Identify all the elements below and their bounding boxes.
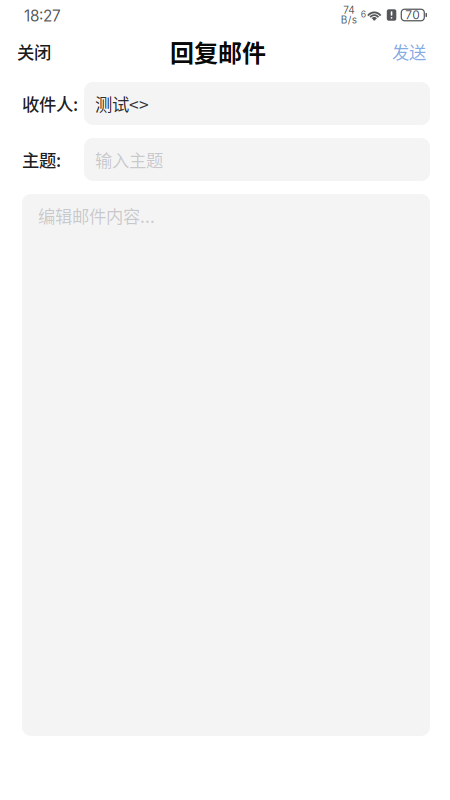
staticText: 测试<> bbox=[95, 91, 149, 116]
staticText: 70 bbox=[405, 8, 420, 22]
staticText: 输入主题 bbox=[95, 147, 163, 172]
staticText: 6 bbox=[361, 9, 366, 19]
staticText: 关闭 bbox=[17, 39, 51, 64]
staticText: 收件人: bbox=[22, 91, 78, 116]
staticText: 发送 bbox=[392, 39, 426, 64]
staticText: 编辑邮件内容... bbox=[38, 203, 155, 228]
button[interactable]: 发送 bbox=[378, 29, 450, 74]
staticText: 主题: bbox=[22, 147, 61, 172]
staticText: B/s bbox=[341, 14, 357, 26]
staticText: 74 bbox=[343, 4, 354, 16]
button[interactable]: 关闭 bbox=[0, 29, 65, 74]
staticText: 18:27 bbox=[24, 7, 61, 25]
button[interactable]: 主题 bbox=[84, 138, 430, 181]
staticText: 回复邮件 bbox=[170, 34, 266, 69]
button[interactable]: 收件人 bbox=[84, 82, 430, 125]
